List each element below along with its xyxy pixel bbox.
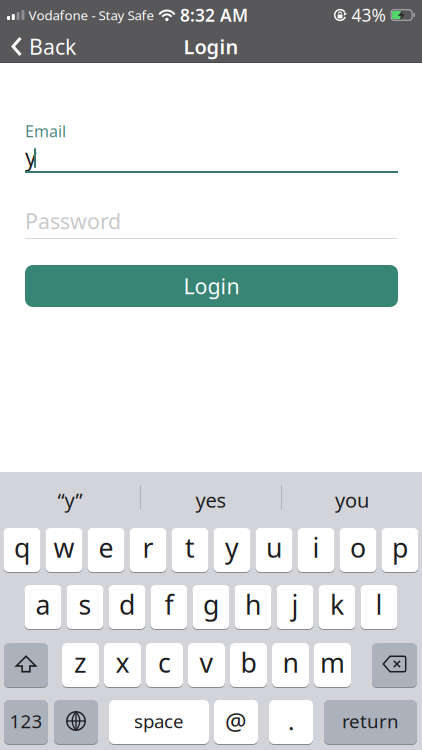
staticText: f bbox=[164, 587, 173, 622]
button[interactable]: Delete bbox=[372, 643, 417, 688]
button[interactable]: Shift bbox=[4, 643, 48, 688]
button[interactable]: Password bbox=[25, 209, 398, 239]
button[interactable]: Back bbox=[11, 30, 76, 63]
staticText: Login bbox=[183, 33, 238, 60]
button[interactable]: 123 bbox=[4, 700, 48, 745]
staticText: q bbox=[14, 530, 30, 565]
button[interactable]: g bbox=[192, 585, 229, 630]
staticText: y bbox=[25, 142, 37, 172]
button[interactable]: p bbox=[381, 528, 418, 573]
button[interactable]: you bbox=[282, 472, 422, 528]
staticText: Vodafone - Stay Safe bbox=[28, 6, 154, 24]
staticText: p bbox=[392, 530, 408, 565]
button[interactable]: s bbox=[66, 585, 103, 630]
staticText: x bbox=[115, 645, 129, 680]
button[interactable]: @ bbox=[214, 700, 258, 745]
staticText: space bbox=[134, 709, 184, 733]
staticText: a bbox=[35, 587, 50, 622]
staticText: “y” bbox=[57, 487, 82, 513]
button[interactable]: r bbox=[129, 528, 166, 573]
button[interactable]: Email bbox=[25, 146, 398, 173]
staticText: t bbox=[185, 530, 195, 565]
button[interactable]: n bbox=[272, 643, 309, 688]
button[interactable]: “y” bbox=[0, 472, 140, 528]
staticText: 123 bbox=[9, 709, 42, 733]
staticText: h bbox=[245, 587, 261, 622]
staticText: d bbox=[119, 587, 135, 622]
staticText: Back bbox=[29, 32, 76, 61]
button[interactable]: l bbox=[360, 585, 397, 630]
staticText: c bbox=[158, 645, 171, 680]
button[interactable]: o bbox=[339, 528, 376, 573]
button[interactable]: e bbox=[87, 528, 124, 573]
staticText: y bbox=[225, 530, 239, 565]
button[interactable]: w bbox=[45, 528, 82, 573]
staticText: o bbox=[350, 530, 366, 565]
button[interactable]: m bbox=[314, 643, 351, 688]
staticText: yes bbox=[195, 487, 226, 513]
staticText: j bbox=[291, 587, 298, 622]
staticText: 43% bbox=[352, 3, 386, 26]
button[interactable]: k bbox=[318, 585, 355, 630]
staticText: e bbox=[98, 530, 113, 565]
button[interactable]: Login bbox=[25, 265, 398, 307]
staticText: v bbox=[199, 645, 213, 680]
button[interactable]: t bbox=[171, 528, 208, 573]
staticText: k bbox=[330, 587, 344, 622]
button[interactable]: u bbox=[255, 528, 292, 573]
button[interactable]: return bbox=[324, 700, 417, 745]
button[interactable]: yes bbox=[141, 472, 281, 528]
button[interactable]: y bbox=[213, 528, 250, 573]
button[interactable]: j bbox=[276, 585, 313, 630]
staticText: l bbox=[375, 587, 382, 622]
staticText: m bbox=[320, 645, 345, 680]
staticText: @ bbox=[225, 705, 247, 737]
button[interactable]: d bbox=[108, 585, 145, 630]
button[interactable]: . bbox=[269, 700, 313, 745]
staticText: r bbox=[142, 530, 153, 565]
button[interactable]: Next keyboard bbox=[54, 700, 98, 745]
button[interactable]: i bbox=[297, 528, 334, 573]
staticText: i bbox=[312, 530, 319, 565]
staticText: 8:32 AM bbox=[180, 3, 248, 26]
button[interactable]: b bbox=[230, 643, 267, 688]
staticText: u bbox=[266, 530, 282, 565]
staticText: g bbox=[203, 587, 219, 622]
button[interactable]: a bbox=[24, 585, 61, 630]
staticText: you bbox=[335, 487, 369, 513]
staticText: n bbox=[282, 645, 298, 680]
button[interactable]: space bbox=[109, 700, 209, 745]
button[interactable]: f bbox=[150, 585, 187, 630]
button[interactable]: x bbox=[104, 643, 141, 688]
button[interactable]: h bbox=[234, 585, 271, 630]
staticText: Email bbox=[25, 120, 66, 142]
staticText: . bbox=[288, 705, 294, 737]
staticText: Login bbox=[183, 272, 239, 300]
staticText: z bbox=[74, 645, 87, 680]
staticText: w bbox=[53, 530, 74, 565]
staticText: return bbox=[342, 709, 399, 733]
button[interactable]: c bbox=[146, 643, 183, 688]
staticText: b bbox=[240, 645, 256, 680]
button[interactable]: z bbox=[62, 643, 99, 688]
staticText: s bbox=[78, 587, 91, 622]
button[interactable]: q bbox=[3, 528, 40, 573]
button[interactable]: v bbox=[188, 643, 225, 688]
staticText: Password bbox=[25, 207, 121, 235]
